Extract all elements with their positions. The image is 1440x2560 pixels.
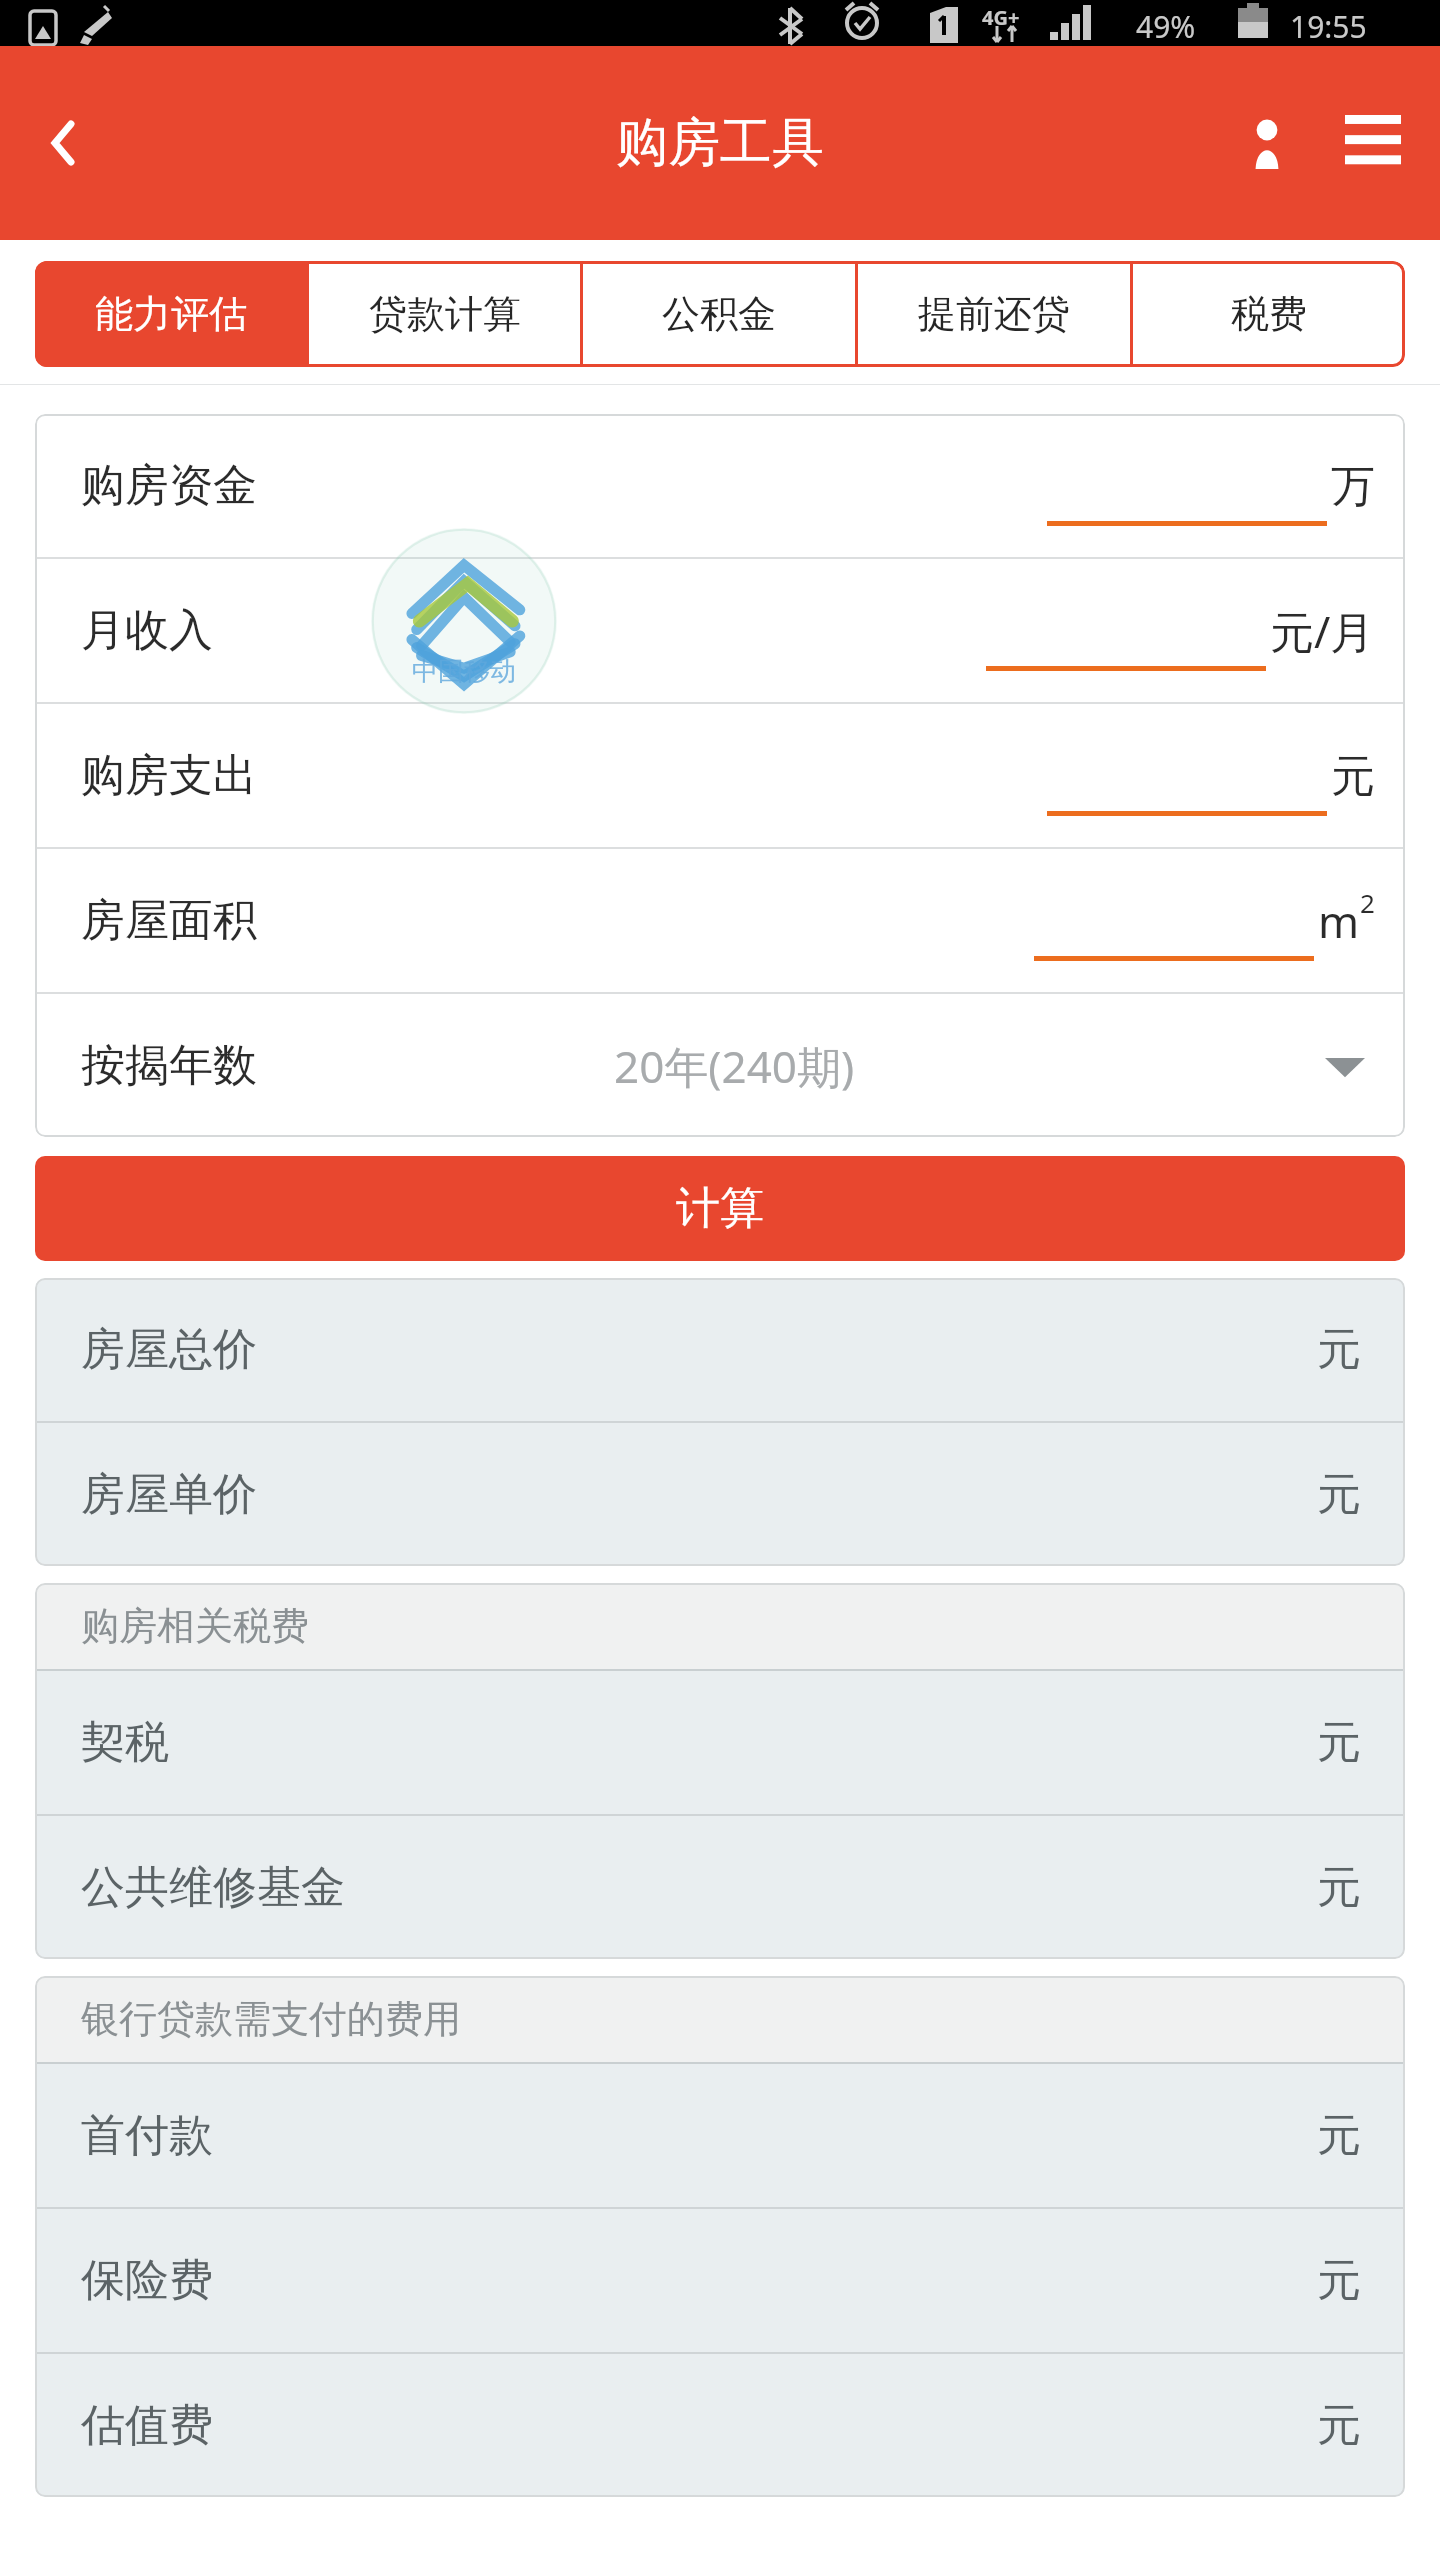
staticText: 元	[1317, 2108, 1361, 2163]
staticText: 元	[1331, 749, 1375, 804]
button[interactable]: 提前还贷	[858, 261, 1130, 367]
staticText: 提前还贷	[918, 290, 1070, 338]
button[interactable]: 契税	[35, 1671, 1405, 1814]
staticText: 购房资金	[81, 458, 257, 513]
staticText: 元	[1317, 2253, 1361, 2308]
staticText: 2	[1360, 885, 1375, 920]
staticText: 4G+	[982, 4, 1020, 31]
button[interactable]: 房屋总价	[35, 1278, 1405, 1421]
staticText: 契税	[81, 1715, 169, 1770]
button[interactable]	[986, 591, 1266, 671]
button[interactable]: 公共维修基金	[35, 1816, 1405, 1959]
staticText: 房屋面积	[81, 893, 257, 948]
staticText: 19:55	[1290, 6, 1367, 47]
staticText: 公共维修基金	[81, 1860, 345, 1915]
staticText: 月收入	[81, 603, 213, 658]
button[interactable]: 计算	[35, 1156, 1405, 1261]
staticText: 元	[1317, 1715, 1361, 1770]
staticText: 首付款	[81, 2108, 213, 2163]
staticText: m	[1318, 891, 1360, 951]
staticText: 购房支出	[81, 748, 257, 803]
button[interactable]: 税费	[1133, 261, 1405, 367]
staticText: 估值费	[81, 2398, 213, 2453]
button[interactable]: 首付款	[35, 2064, 1405, 2207]
staticText: 税费	[1231, 290, 1307, 338]
button[interactable]: 贷款计算	[309, 261, 580, 367]
staticText: 房屋单价	[81, 1467, 257, 1522]
button[interactable]	[1047, 446, 1327, 526]
staticText: 公积金	[662, 290, 776, 338]
staticText: 购房工具	[616, 110, 824, 176]
staticText: 中国移动	[412, 655, 516, 688]
button[interactable]: 按揭年数	[35, 994, 1405, 1137]
button[interactable]	[1034, 881, 1314, 961]
button[interactable]: Menu	[1330, 100, 1416, 186]
staticText: 元	[1317, 2398, 1361, 2453]
staticText: 元/月	[1270, 601, 1375, 661]
button[interactable]: Account	[1224, 100, 1310, 186]
button[interactable]: Back	[20, 98, 110, 188]
staticText: 房屋总价	[81, 1322, 257, 1377]
staticText: 元	[1317, 1467, 1361, 1522]
staticText: 贷款计算	[369, 290, 521, 338]
staticText: 能力评估	[95, 290, 247, 338]
staticText: 元	[1317, 1322, 1361, 1377]
staticText: 按揭年数	[81, 1038, 257, 1093]
button[interactable]: 估值费	[35, 2354, 1405, 2497]
staticText: 万	[1331, 459, 1375, 514]
button[interactable]: 保险费	[35, 2209, 1405, 2352]
staticText: 购房相关税费	[81, 1602, 309, 1650]
staticText: 49%	[1136, 6, 1196, 47]
button[interactable]: 房屋单价	[35, 1423, 1405, 1566]
button[interactable]	[1047, 736, 1327, 816]
staticText: 元	[1317, 1860, 1361, 1915]
staticText: 保险费	[81, 2253, 213, 2308]
button[interactable]: 能力评估	[35, 261, 306, 367]
staticText: 20年(240期)	[614, 1036, 855, 1096]
staticText: 计算	[676, 1181, 764, 1236]
button[interactable]: 公积金	[583, 261, 855, 367]
staticText: 银行贷款需支付的费用	[81, 1995, 461, 2043]
